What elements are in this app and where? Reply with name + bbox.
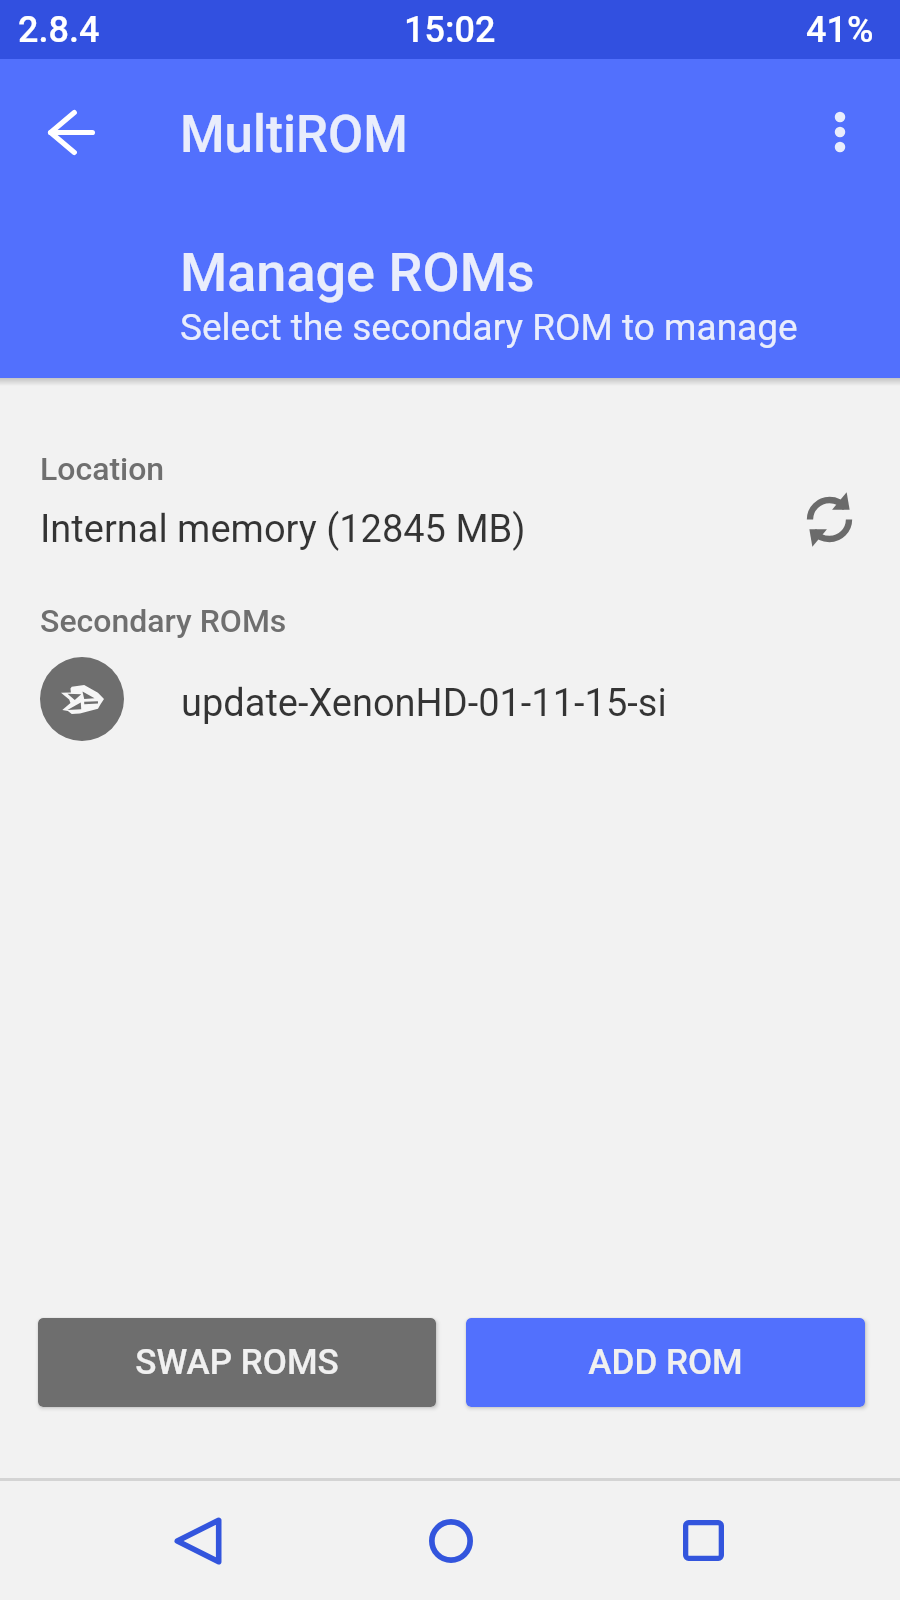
staticText: update-XenonHD-01-11-15-si <box>181 681 667 726</box>
button[interactable]: update-XenonHD-01-11-15-si <box>0 657 900 741</box>
button[interactable]: Home <box>324 1481 577 1600</box>
button[interactable]: Refresh <box>790 480 868 558</box>
staticText: 41% <box>806 9 874 51</box>
staticText: Manage ROMs <box>180 241 535 304</box>
staticText: SWAP ROMS <box>135 1342 339 1383</box>
button[interactable]: Back <box>71 1481 324 1600</box>
button[interactable]: More options <box>797 89 883 175</box>
staticText: Select the secondary ROM to manage <box>180 306 798 349</box>
staticText: 15:02 <box>404 9 496 51</box>
staticText: Location <box>40 450 165 488</box>
staticText: MultiROM <box>180 105 408 165</box>
button[interactable]: ADD ROM <box>466 1318 865 1407</box>
button[interactable]: Back <box>28 89 114 175</box>
button[interactable]: SWAP ROMS <box>38 1318 436 1407</box>
staticText: Internal memory (12845 MB) <box>40 507 526 552</box>
staticText: Secondary ROMs <box>40 602 287 640</box>
staticText: ADD ROM <box>588 1342 743 1383</box>
button[interactable]: Recents <box>577 1481 830 1600</box>
staticText: 2.8.4 <box>18 9 100 51</box>
